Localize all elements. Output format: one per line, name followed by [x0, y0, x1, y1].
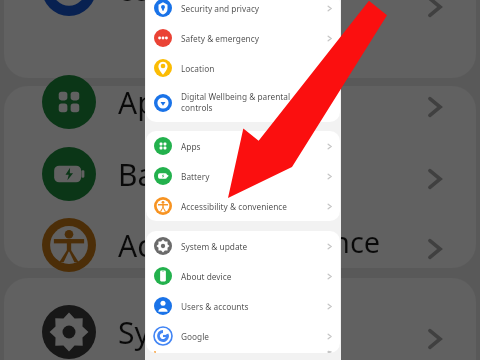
- staticText: About device: [181, 271, 322, 282]
- button[interactable]: Google: [146, 321, 340, 351]
- staticText: Apps: [181, 141, 322, 152]
- staticText: Users & accounts: [181, 301, 322, 312]
- staticText: Bat: [118, 154, 166, 195]
- button[interactable]: About device: [146, 261, 340, 291]
- other: Annotation arrow pointing to Accessibili…: [0, 0, 480, 360]
- staticText: App: [118, 82, 175, 123]
- button[interactable]: Battery: [146, 161, 340, 191]
- button[interactable]: Digital Wellbeing & parental controls: [146, 83, 340, 122]
- staticText: Location: [181, 63, 322, 74]
- button[interactable]: Help & feedback: [146, 351, 340, 353]
- staticText: Battery: [181, 171, 322, 182]
- staticText: nce: [332, 222, 381, 261]
- button[interactable]: Apps: [146, 131, 340, 161]
- staticText: Security and privacy: [181, 3, 322, 14]
- button[interactable]: System & update: [146, 231, 340, 261]
- staticText: Safety & emergency: [181, 33, 322, 44]
- button[interactable]: Accessibility & convenience: [146, 191, 340, 221]
- staticText: Accessibility & convenience: [181, 201, 322, 212]
- staticText: Acc: [118, 225, 166, 266]
- button[interactable]: Users & accounts: [146, 291, 340, 321]
- button[interactable]: Safety & emergency: [146, 23, 340, 53]
- button[interactable]: Security and privacy: [146, 0, 340, 23]
- staticText: Digital Wellbeing & parental controls: [181, 91, 322, 114]
- staticText: Sys: [118, 312, 165, 353]
- staticText: System & update: [181, 241, 322, 252]
- staticText: con: [118, 0, 170, 10]
- button[interactable]: Location: [146, 53, 340, 83]
- staticText: Google: [181, 331, 322, 342]
